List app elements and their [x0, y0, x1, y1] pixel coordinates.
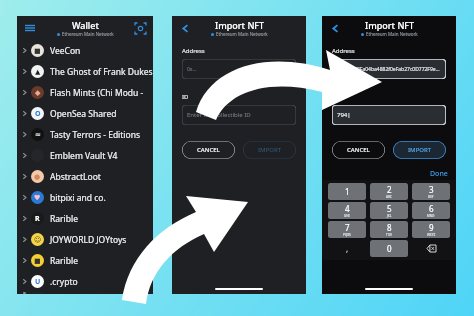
button[interactable]: ≈ [17, 124, 153, 145]
staticText: ● [34, 173, 41, 181]
staticText: TUV [386, 233, 392, 237]
staticText: 5 [387, 203, 392, 214]
staticText: ♥ [34, 194, 41, 202]
staticText: AbstractLoot [50, 171, 101, 183]
staticText: R [35, 214, 40, 224]
button[interactable]: IMPORT [393, 141, 446, 159]
staticText: ▲ [35, 68, 41, 76]
staticText: 794| [337, 111, 351, 119]
staticText: Import NFT [215, 19, 265, 31]
staticText: 4 [345, 203, 350, 214]
staticText: ■ [34, 257, 41, 265]
staticText: IMPORT [258, 146, 282, 154]
staticText: O [35, 109, 41, 119]
staticText: Address [332, 47, 355, 55]
button[interactable]: ☺ [17, 229, 153, 250]
button[interactable]: R [17, 208, 153, 229]
button[interactable]: 794| [332, 105, 446, 125]
button[interactable]: Done [430, 169, 448, 179]
staticText: MNO [427, 214, 435, 218]
button[interactable]: 0x5be372Fa04ba4882f0eFab27c0D772F9e... [332, 59, 446, 79]
button[interactable]: O [17, 103, 153, 124]
button[interactable]: Menu [23, 21, 37, 35]
staticText: .crypto [50, 276, 78, 288]
button[interactable]: ‹› [17, 292, 153, 294]
staticText: GHI [344, 214, 350, 218]
staticText: WXYZ [427, 233, 436, 237]
staticText: 2 [387, 184, 392, 195]
button[interactable]: 8 [370, 221, 408, 238]
button[interactable]: Backspace [410, 239, 452, 258]
button[interactable]: ■ [17, 40, 153, 61]
button[interactable]: ◆ [17, 82, 153, 103]
button[interactable]: 9 [412, 221, 450, 238]
button[interactable]: 7 [328, 221, 366, 238]
staticText: 0x... [187, 66, 197, 73]
staticText: bitpixi and co. [50, 192, 106, 204]
staticText: Address [182, 47, 205, 55]
staticText: Rarible [50, 213, 78, 225]
button[interactable]: 0 [370, 240, 408, 257]
staticText: Enter the collectible ID [187, 111, 251, 119]
staticText: VeeCon [50, 45, 81, 57]
staticText: U [35, 277, 41, 287]
staticText: Flash Mints (Chi Modu - The Second I [50, 87, 153, 99]
button[interactable]: 0x... [182, 59, 296, 79]
staticText: The Ghost of Frank Dukes [50, 66, 153, 78]
button[interactable]: 2 [370, 183, 408, 200]
button[interactable]: ● [17, 166, 153, 187]
staticText: ≈ [35, 131, 41, 139]
button[interactable]: ♥ [17, 187, 153, 208]
staticText: Ethereum Main Network [216, 31, 268, 37]
staticText: Emblem Vault V4 [50, 150, 118, 162]
staticText: JOYWORLD JOYtoys [50, 234, 127, 246]
staticText: 8 [387, 222, 392, 233]
staticText: 7 [345, 222, 350, 233]
staticText: DEF [428, 195, 434, 199]
staticText: JKL [387, 214, 392, 218]
staticText: IMPORT [408, 146, 432, 154]
staticText: ◆ [35, 89, 41, 97]
staticText: , [346, 243, 349, 254]
staticText: 1 [345, 186, 350, 197]
staticText: ■ [34, 47, 41, 55]
staticText: 0 [387, 243, 392, 254]
button[interactable]: 4 [328, 202, 366, 219]
button[interactable]: , [326, 239, 368, 258]
staticText: Done [430, 169, 448, 179]
button[interactable]: ■ [17, 250, 153, 271]
staticText: Import NFT [365, 19, 415, 31]
button[interactable]: 1 [328, 183, 366, 200]
staticText: ENS: Ethereum Name Service [50, 292, 153, 294]
button[interactable]: CANCEL [332, 141, 385, 159]
staticText: 9 [429, 222, 434, 233]
button[interactable]: IMPORT [243, 141, 296, 159]
button[interactable]: 3 [412, 183, 450, 200]
staticText: Tasty Terrors - Editions [50, 129, 141, 141]
button[interactable]: ▲ [17, 61, 153, 82]
button[interactable]: Back [328, 21, 342, 35]
button[interactable]: CANCEL [182, 141, 235, 159]
staticText: PQRS [343, 233, 351, 237]
staticText: 6 [429, 203, 434, 214]
staticText: 0x5be372Fa04ba4882f0eFab27c0D772F9e... [337, 66, 440, 73]
button[interactable]: Enter the collectible ID [182, 105, 296, 125]
staticText: Rarible [50, 255, 78, 267]
button[interactable]: Scan [133, 21, 147, 35]
staticText: CANCEL [347, 146, 370, 154]
button[interactable]: 5 [370, 202, 408, 219]
staticText: ID [182, 93, 189, 101]
button[interactable]: 6 [412, 202, 450, 219]
button[interactable]: Back [178, 21, 192, 35]
staticText: CANCEL [197, 146, 220, 154]
staticText: Ethereum Main Network [62, 31, 114, 37]
staticText: 3 [429, 184, 434, 195]
staticText: ☺ [34, 236, 42, 244]
staticText: OpenSea Shared Storefront [50, 108, 153, 120]
staticText: Ethereum Main Network [366, 31, 418, 37]
button[interactable]: U [17, 271, 153, 292]
staticText: Wallet [72, 19, 99, 31]
button[interactable]: Emblem Vault V4 [17, 145, 153, 166]
